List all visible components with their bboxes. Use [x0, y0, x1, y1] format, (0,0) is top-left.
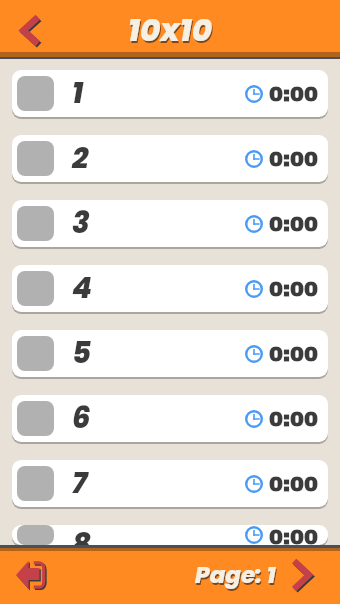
staticText: 0:00	[269, 83, 319, 106]
button[interactable]: Undo	[6, 549, 58, 601]
button[interactable]: 1	[12, 70, 328, 117]
staticText: 4	[72, 268, 93, 309]
staticText: 8	[72, 525, 91, 545]
staticText: 10x10	[129, 10, 214, 53]
staticText: Page: 1	[195, 559, 276, 591]
button[interactable]: Back	[4, 4, 56, 56]
button[interactable]: 5	[12, 330, 328, 377]
button[interactable]: 4	[12, 265, 328, 312]
staticText: 6	[72, 398, 91, 439]
staticText: 0:00	[269, 213, 319, 236]
staticText: Page: 1	[196, 561, 277, 593]
button[interactable]: Page: 1	[195, 555, 315, 595]
staticText: 2	[72, 138, 89, 179]
staticText: 0:00	[269, 526, 319, 545]
staticText: 0:00	[269, 408, 319, 431]
button[interactable]: 6	[12, 395, 328, 442]
button[interactable]: 2	[12, 135, 328, 182]
staticText: 10x10	[128, 8, 213, 51]
button[interactable]: 3	[12, 200, 328, 247]
staticText: 0:00	[269, 148, 319, 171]
staticText: 0:00	[269, 278, 319, 301]
staticText: 5	[72, 333, 91, 374]
staticText: 7	[72, 463, 88, 504]
staticText: 0:00	[269, 473, 319, 496]
button[interactable]: 8	[12, 525, 328, 545]
staticText: 3	[72, 203, 90, 244]
button[interactable]: 7	[12, 460, 328, 507]
staticText: 1	[72, 73, 84, 114]
staticText: 0:00	[269, 343, 319, 366]
